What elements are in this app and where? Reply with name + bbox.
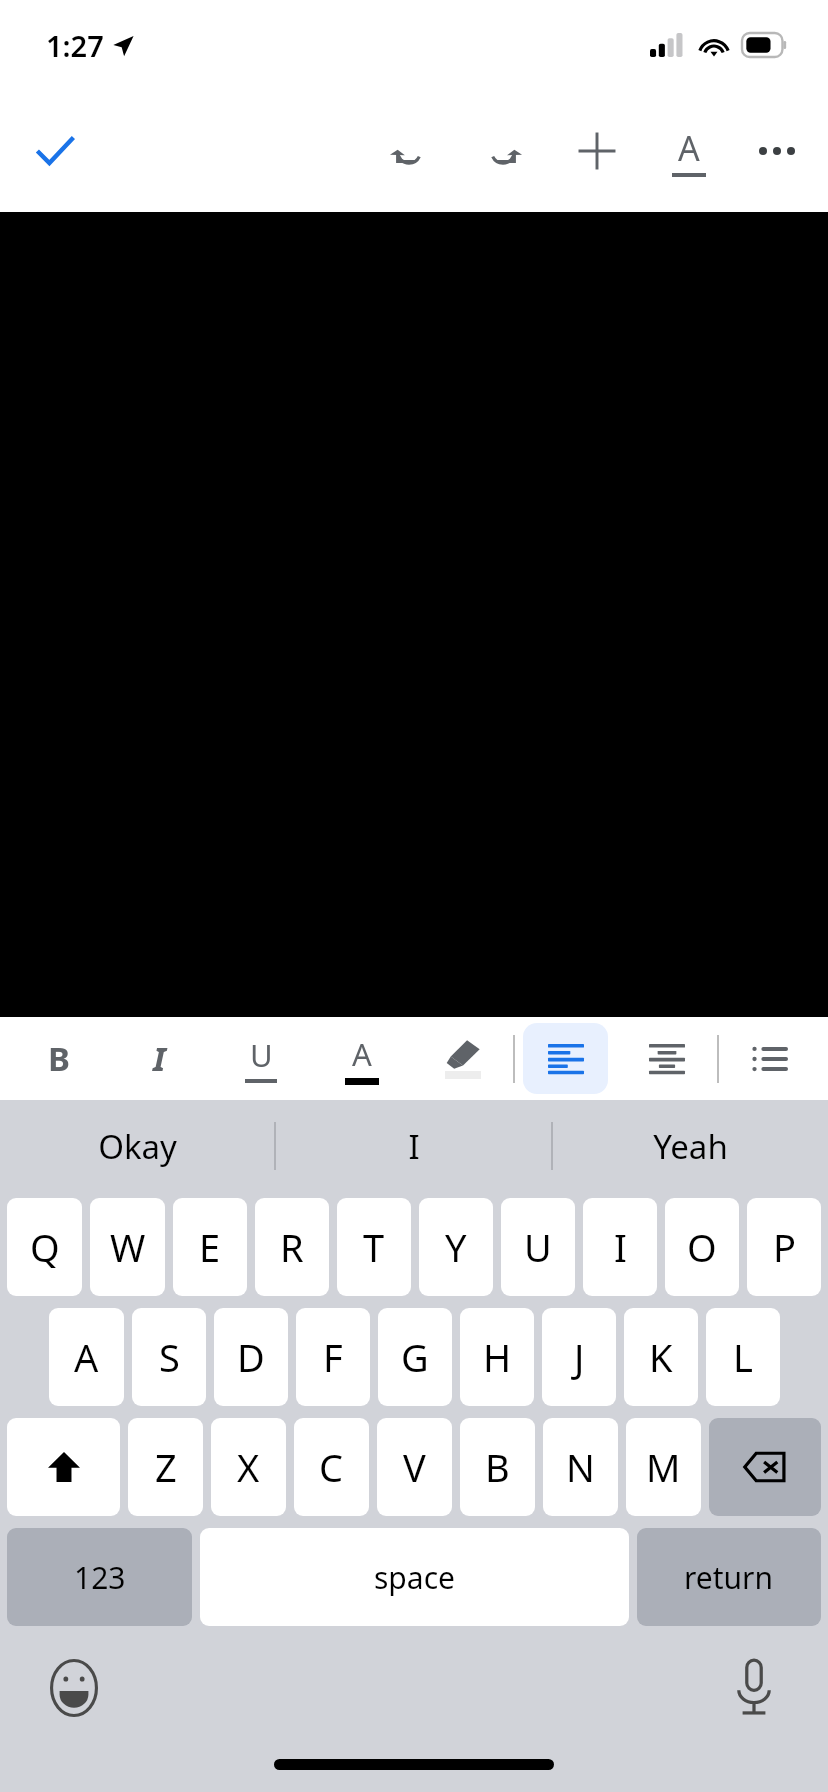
- button[interactable]: I: [583, 1198, 657, 1296]
- button[interactable]: R: [255, 1198, 329, 1296]
- staticText: H: [483, 1331, 512, 1383]
- staticText: return: [684, 1557, 774, 1598]
- staticText: U: [524, 1221, 552, 1273]
- staticText: I: [408, 1124, 420, 1169]
- staticText: M: [646, 1441, 681, 1493]
- staticText: 123: [74, 1557, 126, 1598]
- button[interactable]: Insert: [564, 118, 630, 184]
- staticText: A: [74, 1331, 99, 1383]
- staticText: G: [401, 1331, 429, 1383]
- button[interactable]: M: [626, 1418, 701, 1516]
- button[interactable]: E: [173, 1198, 247, 1296]
- staticText: X: [237, 1441, 260, 1493]
- button[interactable]: Text color: [319, 1023, 404, 1094]
- staticText: N: [566, 1441, 595, 1493]
- button[interactable]: I: [276, 1100, 551, 1192]
- staticText: space: [374, 1557, 455, 1598]
- staticText: I: [614, 1221, 627, 1273]
- button[interactable]: Align center: [624, 1023, 709, 1094]
- button[interactable]: Okay: [0, 1100, 274, 1192]
- button[interactable]: L: [706, 1308, 780, 1406]
- staticText: F: [323, 1331, 343, 1383]
- button[interactable]: Highlight color: [420, 1023, 505, 1094]
- button[interactable]: Done: [22, 118, 88, 184]
- staticText: S: [159, 1331, 180, 1383]
- button[interactable]: V: [377, 1418, 452, 1516]
- staticText: Z: [155, 1441, 177, 1493]
- button[interactable]: Bulleted list: [727, 1023, 812, 1094]
- staticText: Q: [30, 1221, 60, 1273]
- button[interactable]: X: [211, 1418, 286, 1516]
- staticText: R: [280, 1221, 304, 1273]
- button[interactable]: K: [624, 1308, 698, 1406]
- button[interactable]: Q: [7, 1198, 82, 1296]
- staticText: E: [199, 1221, 221, 1273]
- button[interactable]: W: [90, 1198, 165, 1296]
- staticText: L: [733, 1331, 753, 1383]
- staticText: I: [153, 1036, 166, 1081]
- staticText: A: [678, 125, 700, 171]
- staticText: 1:27: [46, 26, 104, 65]
- button[interactable]: space: [200, 1528, 629, 1626]
- button[interactable]: S: [132, 1308, 206, 1406]
- staticText: V: [403, 1441, 426, 1493]
- button[interactable]: T: [337, 1198, 411, 1296]
- staticText: C: [319, 1441, 344, 1493]
- staticText: Okay: [98, 1124, 177, 1169]
- staticText: Y: [445, 1221, 467, 1273]
- button[interactable]: Redo: [470, 118, 536, 184]
- button[interactable]: O: [665, 1198, 739, 1296]
- button[interactable]: Emoji: [42, 1656, 106, 1720]
- button[interactable]: C: [294, 1418, 369, 1516]
- button[interactable]: Italic: [117, 1023, 202, 1094]
- button[interactable]: Dictation: [722, 1656, 786, 1720]
- button[interactable]: Undo: [376, 118, 442, 184]
- staticText: D: [237, 1331, 265, 1383]
- button[interactable]: H: [460, 1308, 534, 1406]
- button[interactable]: P: [747, 1198, 821, 1296]
- button[interactable]: return: [637, 1528, 821, 1626]
- button[interactable]: J: [542, 1308, 616, 1406]
- button[interactable]: Underline: [218, 1023, 303, 1094]
- button[interactable]: More options: [744, 118, 810, 184]
- button[interactable]: B: [460, 1418, 535, 1516]
- button[interactable]: Backspace: [709, 1418, 821, 1516]
- button[interactable]: Y: [419, 1198, 493, 1296]
- button[interactable]: Numbers: [7, 1528, 192, 1626]
- staticText: J: [574, 1331, 585, 1383]
- button[interactable]: Shift: [7, 1418, 120, 1516]
- button[interactable]: F: [296, 1308, 370, 1406]
- staticText: T: [363, 1221, 385, 1273]
- staticText: B: [48, 1036, 70, 1081]
- button[interactable]: G: [378, 1308, 452, 1406]
- button[interactable]: Z: [128, 1418, 203, 1516]
- staticText: P: [773, 1221, 796, 1273]
- staticText: U: [250, 1034, 273, 1076]
- staticText: Yeah: [653, 1124, 728, 1169]
- staticText: B: [485, 1441, 510, 1493]
- staticText: A: [352, 1033, 372, 1075]
- button[interactable]: Bold: [16, 1023, 101, 1094]
- button[interactable]: Align left: [523, 1023, 608, 1094]
- button[interactable]: Yeah: [553, 1100, 828, 1192]
- button[interactable]: A: [49, 1308, 124, 1406]
- staticText: O: [687, 1221, 717, 1273]
- button[interactable]: U: [501, 1198, 575, 1296]
- button[interactable]: D: [214, 1308, 288, 1406]
- button[interactable]: Text formatting: [656, 118, 722, 184]
- staticText: K: [649, 1331, 673, 1383]
- button[interactable]: N: [543, 1418, 618, 1516]
- staticText: W: [110, 1221, 146, 1273]
